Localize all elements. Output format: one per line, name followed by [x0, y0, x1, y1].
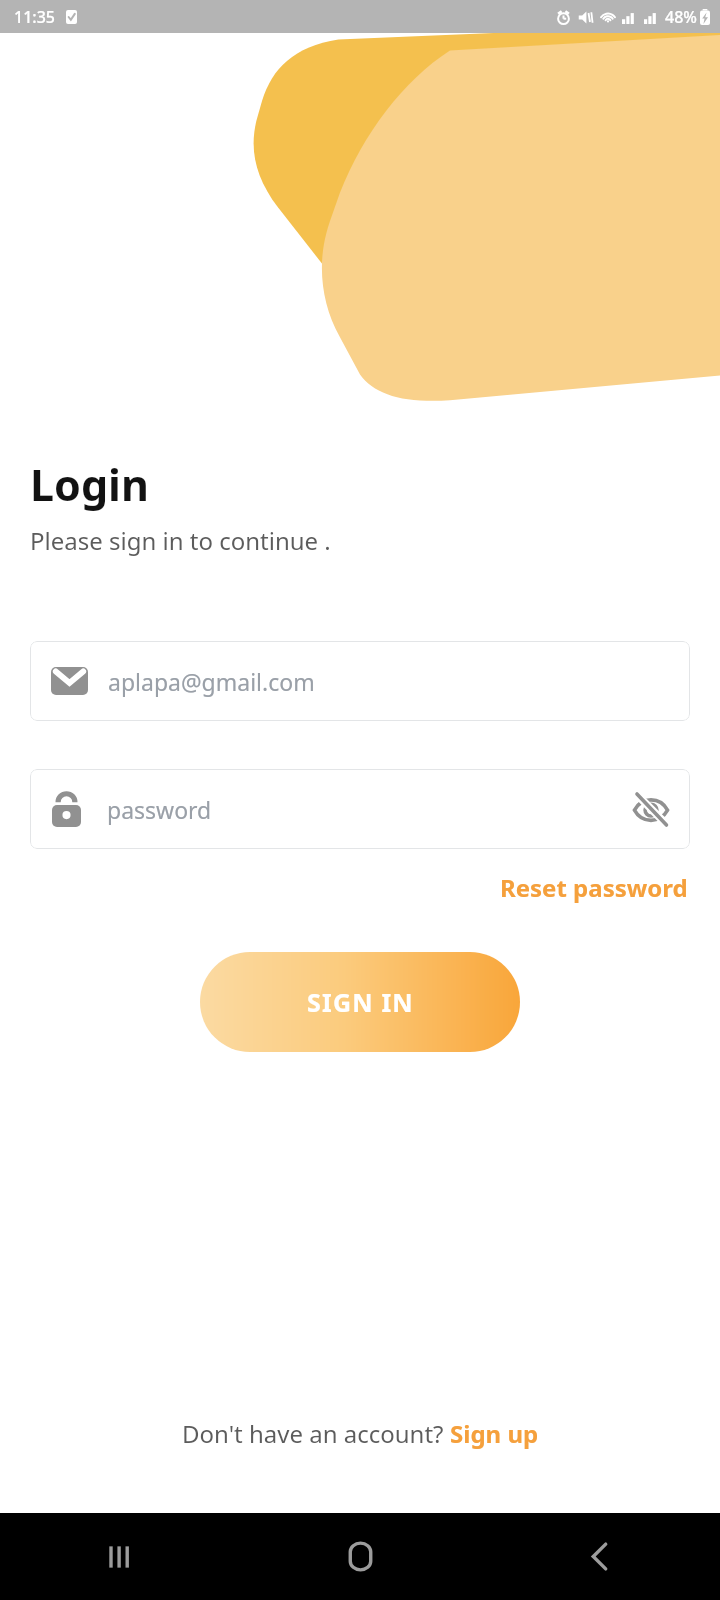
- button[interactable]: SIGN IN: [200, 952, 520, 1052]
- staticText: Reset password: [500, 871, 688, 904]
- staticText: 48%: [665, 6, 697, 28]
- staticText: SIGN IN: [307, 985, 414, 1019]
- staticText: Login: [30, 455, 149, 514]
- button[interactable]: Home: [240, 1513, 480, 1600]
- staticText: aplapa@gmail.com: [108, 666, 315, 697]
- button[interactable]: Sign up: [450, 1417, 539, 1450]
- button[interactable]: password: [30, 769, 690, 849]
- staticText: 11:35: [14, 6, 55, 28]
- button[interactable]: Show password: [626, 784, 676, 834]
- button[interactable]: Reset password: [498, 867, 690, 908]
- staticText: Sign up: [450, 1417, 539, 1450]
- button[interactable]: Back: [480, 1513, 720, 1600]
- staticText: Don't have an account?: [182, 1417, 450, 1450]
- staticText: password: [107, 794, 626, 825]
- button[interactable]: Recents: [0, 1513, 240, 1600]
- button[interactable]: aplapa@gmail.com: [30, 641, 690, 721]
- staticText: Please sign in to continue .: [30, 524, 331, 557]
